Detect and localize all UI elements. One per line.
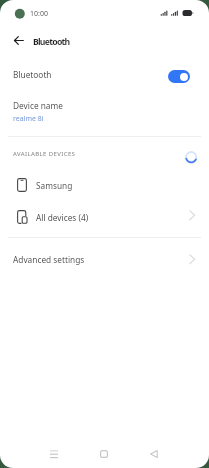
button[interactable]: Bluetooth: [0, 60, 209, 89]
staticText: AVAILABLE DEVICES: [13, 150, 76, 158]
staticText: All devices (4): [36, 212, 89, 223]
staticText: Device name: [13, 100, 63, 111]
button[interactable]: [6, 30, 32, 50]
button[interactable]: Samsung: [0, 170, 209, 200]
staticText: realme 8i: [13, 114, 44, 124]
staticText: 10:00: [30, 9, 48, 19]
staticText: Bluetooth: [33, 36, 70, 48]
button[interactable]: [142, 440, 166, 468]
button[interactable]: [168, 70, 190, 83]
button[interactable]: Device name: [0, 92, 209, 130]
staticText: Bluetooth: [13, 69, 52, 80]
button[interactable]: Advanced settings: [0, 244, 209, 275]
button[interactable]: All devices (4): [0, 202, 209, 232]
button[interactable]: [92, 440, 116, 468]
button[interactable]: [42, 440, 66, 468]
staticText: Advanced settings: [13, 254, 85, 265]
staticText: Samsung: [36, 180, 73, 191]
